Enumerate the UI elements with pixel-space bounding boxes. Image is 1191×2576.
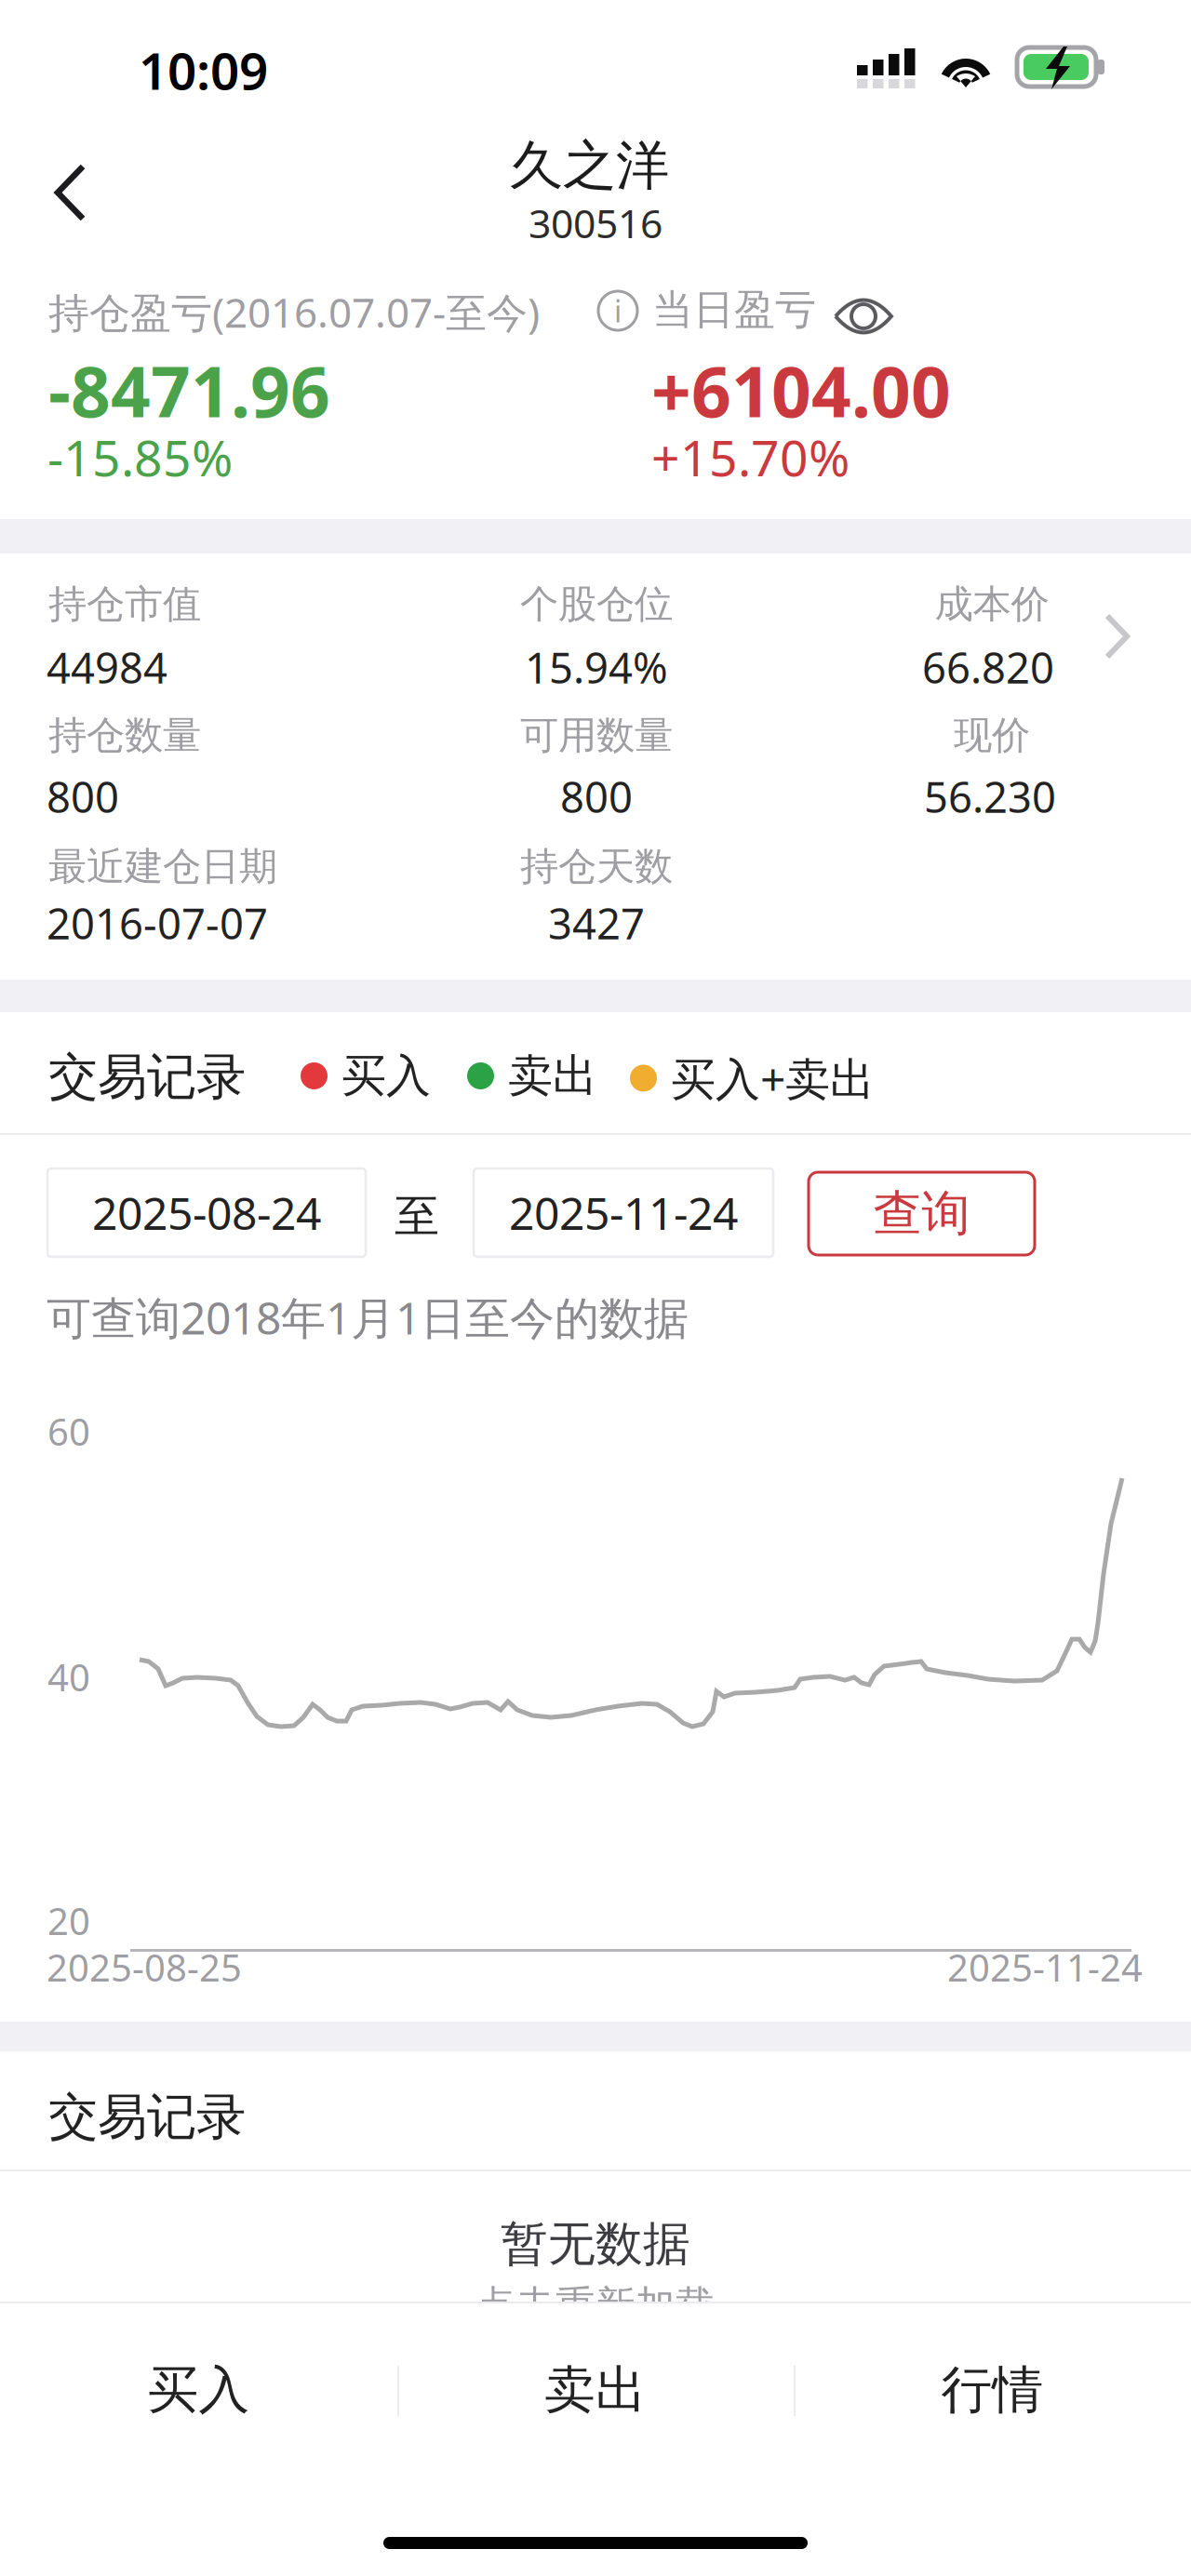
button[interactable]: 查询 <box>809 1172 1035 1255</box>
staticText: 买入 <box>147 2359 250 2421</box>
staticText: +15.70% <box>651 424 850 490</box>
staticText: 15.94% <box>525 639 668 695</box>
staticText: 44984 <box>47 639 167 695</box>
staticText: 至 <box>395 1189 439 1244</box>
staticText: 最近建仓日期 <box>48 843 277 890</box>
button[interactable]: 行情 <box>794 2335 1191 2445</box>
staticText: 交易记录 <box>48 1047 246 1108</box>
staticText: 66.820 <box>922 639 1054 695</box>
staticText: 10:09 <box>139 36 268 104</box>
staticText: 2016-07-07 <box>47 895 268 951</box>
staticText: 可用数量 <box>520 712 673 759</box>
button[interactable]: 卖出 <box>397 2335 794 2445</box>
staticText: 56.230 <box>924 768 1056 824</box>
staticText: 300516 <box>529 196 662 249</box>
staticText: 买入 <box>341 1048 431 1103</box>
staticText: 成本价 <box>935 581 1049 628</box>
staticText: 持仓天数 <box>520 843 673 890</box>
staticText: 暂无数据 <box>501 2215 690 2273</box>
staticText: 60 <box>47 1407 90 1456</box>
staticText: 个股仓位 <box>520 581 673 628</box>
staticText: 40 <box>47 1652 90 1702</box>
staticText: 卖出 <box>544 2359 647 2421</box>
staticText: 3427 <box>548 895 645 951</box>
staticText: 久之洋 <box>510 133 669 199</box>
staticText: 800 <box>47 768 119 824</box>
staticText: 持仓市值 <box>48 581 201 628</box>
staticText: 2025-11-24 <box>947 1942 1143 1992</box>
staticText: i <box>614 291 622 331</box>
button[interactable]: 当日盈亏说明 <box>591 284 645 338</box>
button[interactable]: 2025-11-24 <box>474 1168 773 1257</box>
staticText: 2025-08-25 <box>47 1942 242 1992</box>
staticText: -15.85% <box>47 424 233 490</box>
button[interactable]: Back <box>30 142 132 245</box>
staticText: 当日盈亏 <box>652 285 816 335</box>
staticText: 2025-08-24 <box>92 1183 321 1242</box>
staticText: 卖出 <box>508 1048 597 1103</box>
staticText: 持仓盈亏(2016.07.07-至今) <box>48 285 540 339</box>
staticText: 可查询2018年1月1日至今的数据 <box>47 1288 689 1347</box>
staticText: 买入+卖出 <box>671 1048 875 1108</box>
staticText: 20 <box>47 1896 90 1945</box>
staticText: 查询 <box>873 1184 970 1243</box>
staticText: 2025-11-24 <box>509 1183 738 1242</box>
button[interactable]: 显示或隐藏盈亏 <box>827 289 900 343</box>
staticText: +6104.00 <box>651 344 951 436</box>
staticText: 800 <box>560 768 633 824</box>
staticText: 交易记录 <box>48 2087 246 2148</box>
staticText: 行情 <box>941 2359 1044 2421</box>
staticText: 持仓数量 <box>48 712 201 759</box>
staticText: -8471.96 <box>48 344 330 436</box>
staticText: 点击重新加载 <box>475 2281 716 2330</box>
staticText: 现价 <box>954 712 1030 759</box>
button[interactable]: 2025-08-24 <box>47 1168 366 1257</box>
button[interactable]: 买入 <box>0 2335 397 2445</box>
